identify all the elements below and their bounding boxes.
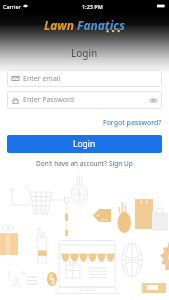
button[interactable]: Forgot password?	[103, 118, 162, 128]
staticText: Forgot password?	[103, 118, 162, 128]
staticText: Lawn	[44, 17, 75, 33]
staticText: Carrier	[3, 3, 21, 10]
button[interactable]: Enter Password	[7, 91, 162, 109]
staticText: Don't have an account?	[36, 159, 109, 168]
staticText: Login	[73, 138, 96, 150]
staticText: Sign Up	[109, 159, 133, 168]
button[interactable]: Sign Up	[109, 159, 133, 168]
staticText: Fanatics	[77, 17, 125, 33]
staticText: Enter Password	[23, 95, 75, 105]
staticText: Enter email	[23, 74, 61, 84]
staticText: Login	[71, 46, 98, 60]
other: Show password	[150, 97, 157, 104]
button[interactable]: Login	[7, 135, 162, 153]
staticText: 1:23 PM	[82, 3, 103, 10]
button[interactable]: Enter email	[7, 70, 162, 87]
